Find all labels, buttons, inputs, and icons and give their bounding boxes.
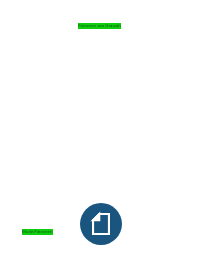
staticText: Patronen van Grauwh — [78, 23, 121, 29]
staticText: Mode Patronen — [22, 229, 53, 235]
button[interactable]: Patronen van Grauwh — [78, 23, 121, 29]
button[interactable]: Mode Patronen — [22, 229, 53, 235]
button[interactable]: New document — [80, 203, 122, 245]
